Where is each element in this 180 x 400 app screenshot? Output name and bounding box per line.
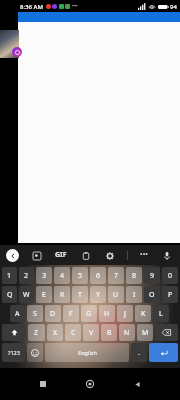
button[interactable]: 3 xyxy=(36,267,52,284)
button[interactable]: H xyxy=(99,305,115,322)
button[interactable]: Home xyxy=(80,374,100,394)
staticText: N xyxy=(124,328,130,338)
staticText: R xyxy=(60,290,65,300)
button[interactable]: R xyxy=(54,286,70,303)
button[interactable]: X xyxy=(47,324,63,341)
button[interactable]: GIF xyxy=(54,249,68,261)
button[interactable]: Back xyxy=(6,249,19,262)
button[interactable]: Voice input xyxy=(160,249,173,262)
staticText: Z xyxy=(34,328,39,338)
staticText: English xyxy=(78,349,97,356)
button[interactable]: Recents xyxy=(33,374,53,394)
button[interactable]: D xyxy=(45,305,61,322)
staticText: I xyxy=(133,290,136,300)
button[interactable]: F xyxy=(63,305,79,322)
button[interactable]: . xyxy=(131,343,147,362)
staticText: J xyxy=(124,309,126,319)
staticText: 8 xyxy=(132,271,137,281)
staticText: GIF xyxy=(55,250,67,260)
button[interactable]: Video thumbnail xyxy=(0,30,19,58)
button[interactable]: 7 xyxy=(108,267,124,284)
staticText: L xyxy=(159,309,163,319)
staticText: . xyxy=(138,348,140,358)
button[interactable]: O xyxy=(144,286,160,303)
button[interactable]: 0 xyxy=(162,267,178,284)
staticText: ••• xyxy=(72,3,78,10)
button[interactable]: L xyxy=(153,305,169,322)
staticText: F xyxy=(69,309,73,319)
button[interactable]: J xyxy=(117,305,133,322)
button[interactable]: I xyxy=(126,286,142,303)
button[interactable]: 1 xyxy=(2,267,17,284)
staticText: Q xyxy=(7,290,13,300)
button[interactable]: 2 xyxy=(19,267,34,284)
staticText: D xyxy=(50,309,56,319)
staticText: S xyxy=(33,309,37,319)
button[interactable]: English xyxy=(45,343,129,362)
button[interactable]: B xyxy=(101,324,117,341)
button[interactable]: P xyxy=(162,286,178,303)
button[interactable]: W xyxy=(19,286,34,303)
button[interactable]: E xyxy=(36,286,52,303)
button[interactable]: M xyxy=(137,324,153,341)
button[interactable]: V xyxy=(83,324,99,341)
staticText: A xyxy=(15,309,20,319)
button[interactable]: Back xyxy=(127,374,147,394)
button[interactable]: Emoji xyxy=(27,343,43,362)
staticText: T xyxy=(78,290,82,300)
button[interactable]: ?123 xyxy=(2,343,25,362)
button[interactable]: 4 xyxy=(54,267,70,284)
staticText: 5 xyxy=(78,271,83,281)
button[interactable]: A xyxy=(10,305,25,322)
button[interactable]: Clipboard xyxy=(79,249,92,262)
staticText: U xyxy=(113,290,119,300)
button[interactable]: Settings xyxy=(103,249,116,262)
staticText: G xyxy=(86,309,92,319)
button[interactable]: Shift xyxy=(2,324,26,341)
button[interactable]: Stickers xyxy=(30,249,43,262)
button[interactable]: C xyxy=(65,324,81,341)
staticText: B xyxy=(107,328,112,338)
button[interactable]: 8 xyxy=(126,267,142,284)
button[interactable]: 6 xyxy=(90,267,106,284)
staticText: C xyxy=(71,328,76,338)
staticText: 3 xyxy=(42,271,47,281)
button[interactable]: Y xyxy=(90,286,106,303)
staticText: 0 xyxy=(168,271,173,281)
staticText: O xyxy=(149,290,155,300)
staticText: M xyxy=(142,328,149,338)
staticText: K xyxy=(141,309,146,319)
button[interactable]: T xyxy=(72,286,88,303)
staticText: 7 xyxy=(114,271,119,281)
staticText: X xyxy=(53,328,58,338)
staticText: 6 xyxy=(96,271,101,281)
button[interactable]: G xyxy=(81,305,97,322)
staticText: Y xyxy=(96,290,100,300)
staticText: 2 xyxy=(24,271,29,281)
staticText: 94 xyxy=(170,3,177,11)
button[interactable]: Enter xyxy=(149,343,178,362)
button[interactable]: N xyxy=(119,324,135,341)
button[interactable]: Q xyxy=(2,286,17,303)
staticText: 8:36 AM xyxy=(20,3,43,11)
button[interactable]: More xyxy=(139,249,149,261)
staticText: 9 xyxy=(150,271,155,281)
staticText: P xyxy=(168,290,173,300)
staticText: H xyxy=(104,309,110,319)
button[interactable]: U xyxy=(108,286,124,303)
staticText: V xyxy=(89,328,94,338)
button[interactable]: K xyxy=(135,305,151,322)
button[interactable]: 9 xyxy=(144,267,160,284)
button[interactable]: 5 xyxy=(72,267,88,284)
button[interactable]: Z xyxy=(28,324,45,341)
button[interactable]: S xyxy=(27,305,43,322)
staticText: 1 xyxy=(7,271,12,281)
staticText: ?123 xyxy=(8,349,20,356)
staticText: 4 xyxy=(60,271,65,281)
staticText: W xyxy=(23,290,30,300)
staticText: E xyxy=(42,290,46,300)
button[interactable]: Backspace xyxy=(155,324,178,341)
staticText: ••• xyxy=(140,250,148,260)
